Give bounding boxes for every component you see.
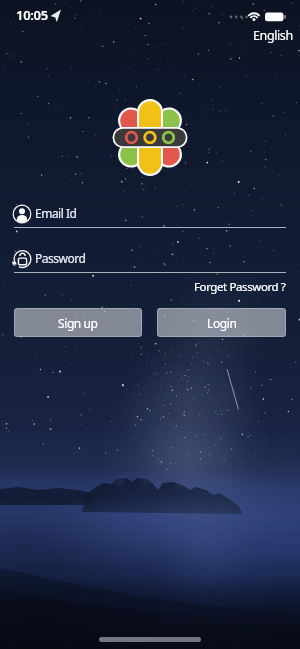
staticText: Login — [207, 315, 237, 331]
staticText: 10:05 — [16, 6, 48, 24]
button[interactable]: Password — [14, 247, 286, 273]
staticText: Forget Password ? — [194, 279, 286, 295]
button[interactable]: Login — [157, 308, 286, 337]
button[interactable]: Sign up — [14, 308, 142, 337]
button[interactable]: Email Id — [14, 202, 286, 228]
staticText: Password — [35, 250, 86, 266]
button[interactable]: Forget Password ? — [194, 279, 286, 295]
staticText: Email Id — [35, 205, 77, 221]
staticText: English — [253, 27, 293, 44]
button[interactable]: English — [253, 27, 293, 44]
staticText: Sign up — [58, 315, 98, 331]
